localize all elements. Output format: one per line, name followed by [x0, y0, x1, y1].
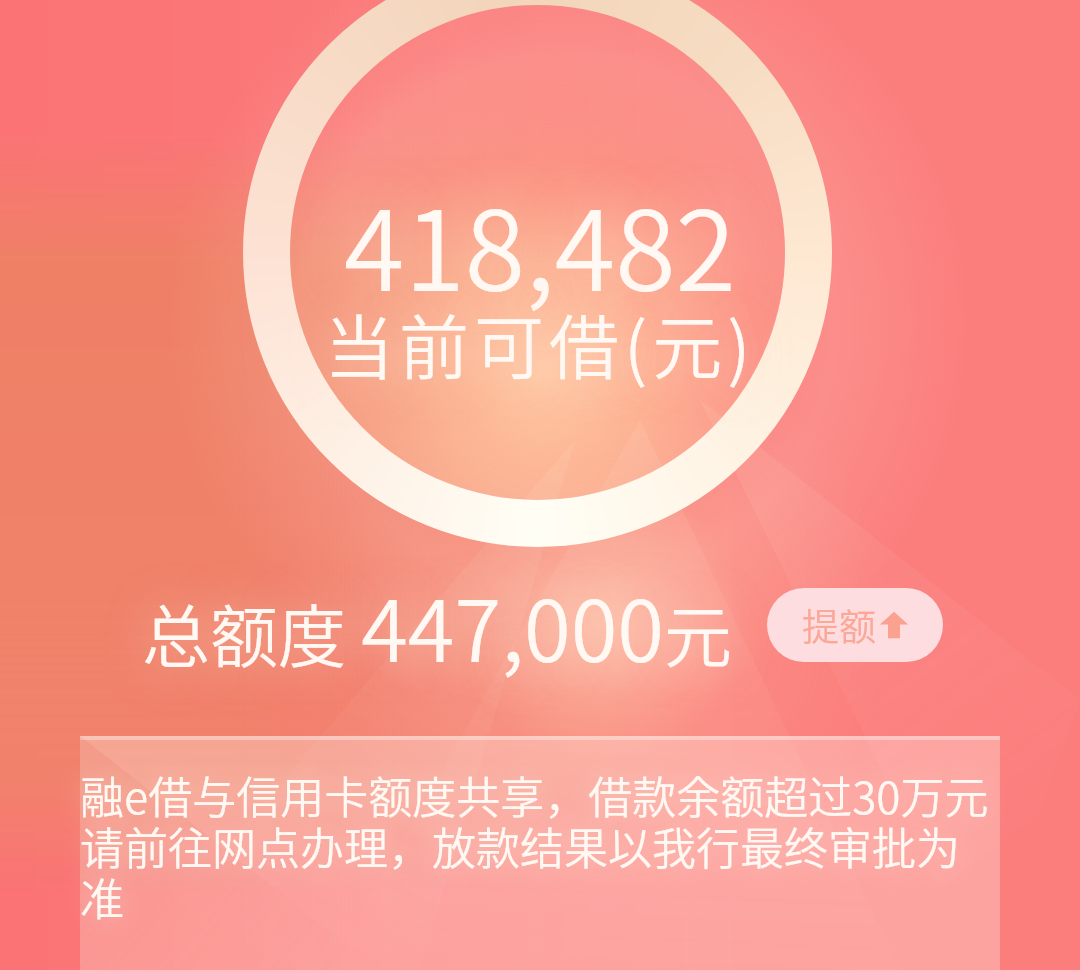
staticText: 融e借与信用卡额度共享，借款余额超过30万元请前往网点办理，放款结果以我行最终审… — [80, 763, 992, 929]
staticText: 当前可借(元) — [324, 293, 756, 394]
other: Raise credit limit — [879, 610, 909, 640]
staticText: 提额 — [802, 598, 876, 652]
staticText: 总额度 447,000元 — [142, 563, 733, 686]
button[interactable]: 提额 — [767, 588, 943, 662]
staticText: 418,482 — [344, 163, 736, 322]
